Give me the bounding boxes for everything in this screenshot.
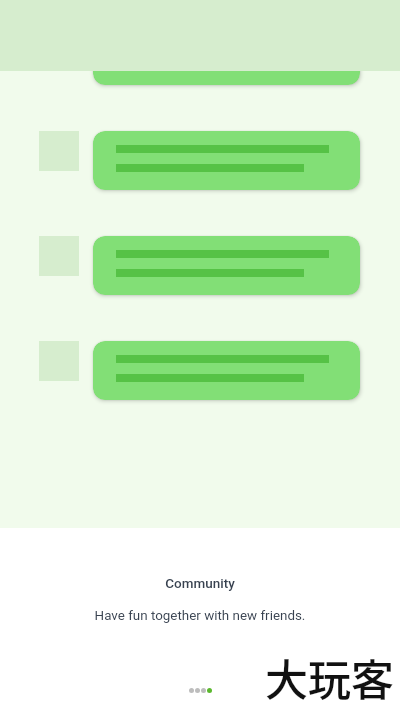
button[interactable] (39, 341, 360, 400)
staticText: Have fun together with new friends. (0, 608, 400, 624)
button[interactable] (39, 26, 360, 85)
button[interactable] (39, 131, 360, 190)
button[interactable] (39, 236, 360, 295)
button[interactable]: Page 4 of 4 (186, 685, 215, 696)
staticText: Community (0, 575, 400, 591)
staticText: 大玩客 (265, 646, 394, 708)
